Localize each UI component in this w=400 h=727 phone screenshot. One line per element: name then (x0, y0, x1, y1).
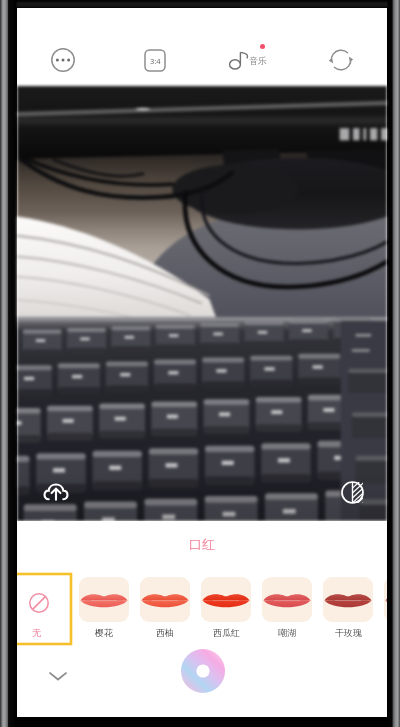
button[interactable]: Filters (335, 475, 369, 509)
button[interactable]: 无 (17, 574, 71, 644)
staticText: 西柚 (156, 627, 174, 638)
button[interactable]: 樱花 (76, 571, 132, 647)
button[interactable]: Switch camera (294, 8, 387, 86)
button[interactable]: Upload to cloud (39, 475, 73, 509)
button[interactable]: Aspect ratio 3 to 4 (109, 8, 201, 86)
button[interactable]: Collapse panel (41, 659, 75, 693)
staticText: 樱花 (95, 627, 113, 638)
button[interactable]: 西瓜红 (198, 571, 254, 647)
button[interactable]: More options (17, 8, 109, 86)
staticText: 无 (32, 627, 41, 638)
button[interactable]: Colour picker (180, 648, 226, 694)
button[interactable]: 干玫瑰 (320, 571, 376, 647)
staticText: 嘲湖 (278, 627, 296, 638)
staticText: 口红 (189, 536, 215, 552)
button[interactable]: 豆沙 (381, 571, 387, 647)
staticText: 西瓜红 (213, 627, 240, 638)
button[interactable]: 嘲湖 (259, 571, 315, 647)
button[interactable]: 西柚 (137, 571, 193, 647)
staticText: 3:4 (150, 56, 161, 66)
staticText: 干玫瑰 (335, 627, 362, 638)
staticText: 音乐 (249, 55, 267, 66)
button[interactable]: 音乐 (201, 8, 294, 86)
